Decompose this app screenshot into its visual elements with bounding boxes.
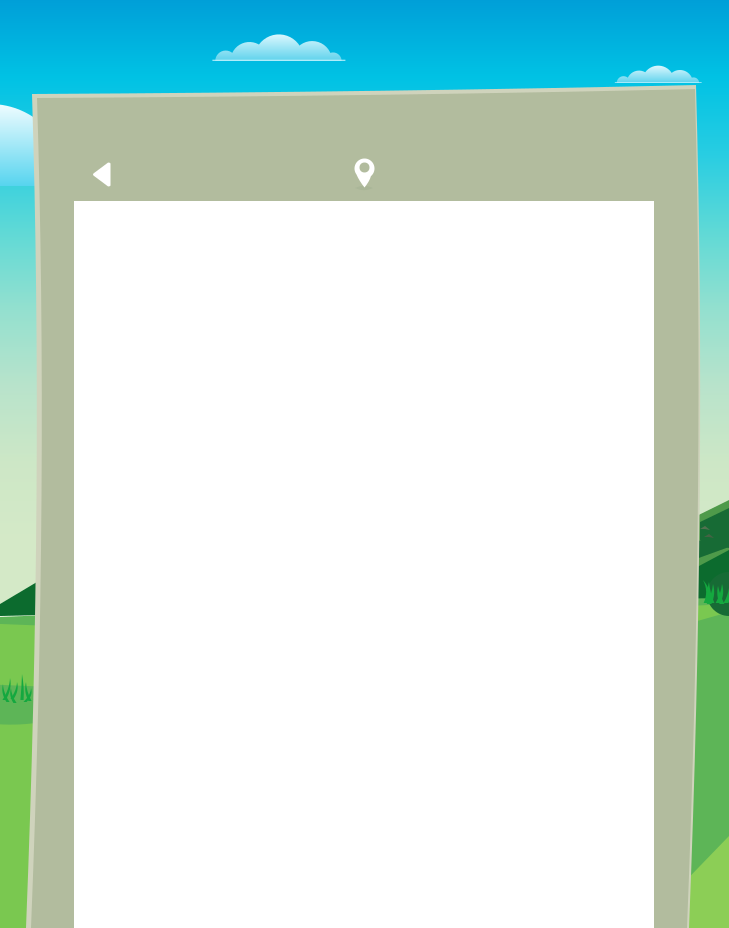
button[interactable]: Current location: [0, 0, 729, 928]
button[interactable]: Back: [0, 0, 729, 928]
